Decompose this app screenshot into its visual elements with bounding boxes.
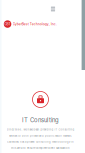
staticText: IT Consulting xyxy=(22,116,59,124)
button[interactable]: Menu xyxy=(48,4,58,14)
staticText: CyberBest Technology, Inc. xyxy=(13,22,57,26)
staticText: services to both private and public sect… xyxy=(9,134,72,137)
staticText: CyberBest has a proven consulting method… xyxy=(7,140,74,143)
staticText: CBT xyxy=(4,22,10,26)
staticText: Since 1996, we have been providing IT Co… xyxy=(6,128,74,131)
staticText: this area to ensure complete client sati… xyxy=(11,146,70,150)
